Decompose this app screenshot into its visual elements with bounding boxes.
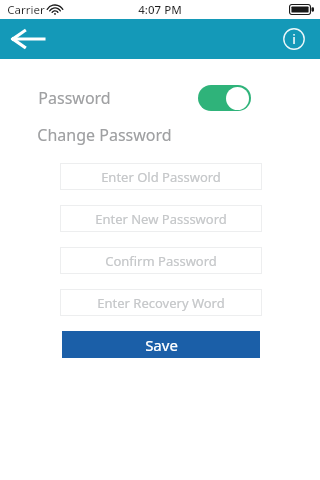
staticText: 4:07 PM: [138, 2, 182, 18]
button[interactable]: Save: [62, 331, 260, 358]
staticText: Confirm Password: [105, 252, 217, 270]
staticText: Save: [145, 335, 178, 355]
staticText: Enter New Passsword: [95, 210, 227, 228]
staticText: Enter Old Password: [101, 168, 221, 186]
button[interactable]: Information: [276, 21, 312, 57]
button[interactable]: Back: [8, 19, 48, 59]
staticText: Enter Recovery Word: [97, 294, 225, 312]
button[interactable]: Enter Old Password: [60, 163, 262, 190]
button[interactable]: Password enabled: [198, 85, 251, 111]
button[interactable]: Confirm Password: [60, 247, 262, 274]
staticText: Carrier: [7, 2, 45, 18]
staticText: i: [292, 31, 296, 47]
staticText: Change Password: [37, 124, 172, 146]
staticText: Password: [38, 87, 111, 109]
button[interactable]: Enter New Passsword: [60, 205, 262, 232]
button[interactable]: Enter Recovery Word: [60, 289, 262, 316]
